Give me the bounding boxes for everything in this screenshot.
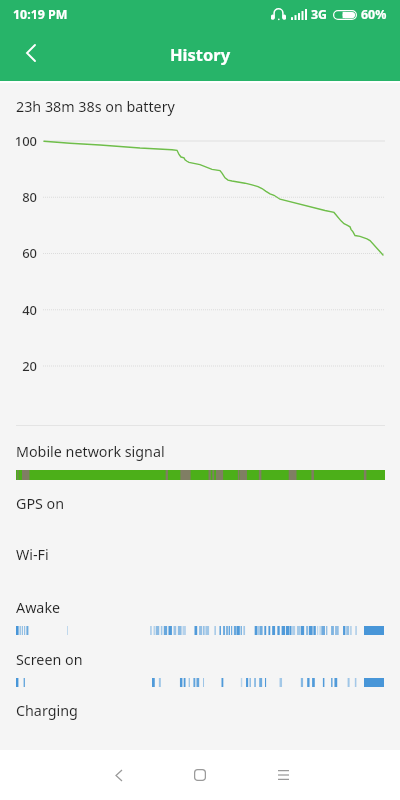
- button[interactable]: Menu: [261, 751, 305, 799]
- staticText: Charging: [16, 701, 78, 720]
- staticText: Awake: [16, 598, 61, 617]
- staticText: 60%: [361, 6, 387, 23]
- staticText: History: [170, 43, 231, 65]
- staticText: Mobile network signal: [16, 442, 165, 461]
- staticText: 20: [22, 357, 37, 375]
- button[interactable]: Home: [178, 751, 222, 799]
- staticText: 3G: [311, 6, 328, 23]
- button[interactable]: Mobile network signal: [0, 441, 400, 493]
- staticText: Screen on: [16, 650, 83, 669]
- staticText: 23h 38m 38s on battery: [16, 97, 175, 116]
- staticText: 40: [22, 301, 37, 319]
- staticText: 60: [22, 244, 37, 262]
- button[interactable]: GPS on: [0, 493, 400, 545]
- button[interactable]: Charging: [0, 700, 400, 752]
- staticText: GPS on: [16, 494, 65, 513]
- button[interactable]: Back: [97, 751, 141, 799]
- button[interactable]: Wi-Fi: [0, 544, 400, 596]
- staticText: 80: [22, 188, 37, 206]
- staticText: 100: [14, 132, 37, 150]
- button[interactable]: Awake: [0, 597, 400, 649]
- staticText: 10:19 PM: [13, 6, 68, 23]
- button[interactable]: Back: [8, 30, 53, 75]
- staticText: Wi-Fi: [16, 545, 49, 564]
- button[interactable]: Screen on: [0, 649, 400, 701]
